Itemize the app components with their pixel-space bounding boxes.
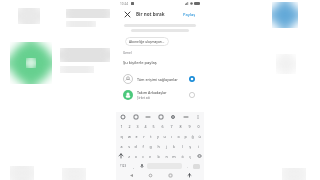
button[interactable]: 1 [117, 121, 125, 131]
button[interactable]: 9 [185, 121, 194, 131]
staticText: 10:24 [120, 2, 129, 6]
button[interactable]: Geri [127, 171, 135, 179]
staticText: 9 [188, 124, 191, 129]
staticText: w [128, 134, 131, 139]
button[interactable]: ç [186, 151, 194, 161]
button[interactable]: a [118, 141, 125, 151]
button[interactable]: Emoji [119, 113, 126, 120]
staticText: v [149, 154, 151, 159]
staticText: u [163, 134, 166, 139]
staticText: a [120, 144, 123, 149]
staticText: k [173, 144, 175, 149]
button[interactable]: Sticker [144, 113, 151, 120]
button[interactable]: o [175, 131, 182, 141]
button[interactable]: ı [168, 131, 175, 141]
staticText: ö [181, 154, 184, 159]
button[interactable]: Son uygulamalar [166, 171, 174, 179]
button[interactable]: Tüm erişimi sağlayanlar [116, 71, 204, 87]
button[interactable]: ö [178, 151, 186, 161]
button[interactable]: Enter [191, 161, 202, 171]
button[interactable]: Shift [117, 151, 125, 161]
button[interactable]: GIF [132, 113, 139, 120]
button[interactable]: q [117, 131, 125, 141]
button[interactable]: Mikrofon [137, 161, 146, 171]
button[interactable]: Ana ekran [146, 171, 154, 179]
button[interactable]: 7 [167, 121, 176, 131]
button[interactable]: Settings [169, 113, 176, 120]
button[interactable]: Klavye [185, 171, 193, 179]
button[interactable]: ğ [189, 131, 196, 141]
button[interactable]: Clipboard [157, 113, 164, 120]
button[interactable]: 0 [194, 121, 203, 131]
button[interactable]: g [146, 141, 154, 151]
button[interactable]: Seçili [187, 74, 197, 84]
button[interactable]: 4 [141, 121, 149, 131]
staticText: ş [189, 144, 191, 149]
staticText: s [128, 144, 130, 149]
button[interactable]: d [132, 141, 139, 151]
staticText: Paylaş [183, 12, 196, 17]
button[interactable]: Paylaş [181, 11, 198, 18]
button[interactable]: 2 [125, 121, 133, 131]
staticText: 8 [179, 124, 182, 129]
button[interactable]: Seç [187, 90, 197, 100]
staticText: n [165, 154, 168, 159]
button[interactable]: p [182, 131, 189, 141]
button[interactable]: e [133, 131, 140, 141]
button[interactable]: s [125, 141, 132, 151]
staticText: c [142, 154, 144, 159]
button[interactable]: h [154, 141, 162, 151]
staticText: Bir not bırak [136, 11, 165, 17]
staticText: Takım Arkadaşlar [137, 90, 167, 95]
button[interactable]: m [170, 151, 178, 161]
staticText: Tüm erişimi sağlayanlar [137, 77, 178, 82]
button[interactable]: 6 [158, 121, 167, 131]
button[interactable]: ü [196, 131, 203, 141]
button[interactable]: More [182, 113, 189, 120]
staticText: 1 [120, 124, 123, 129]
button[interactable]: l [178, 141, 186, 151]
button[interactable]: k [170, 141, 178, 151]
staticText: . [187, 164, 188, 169]
button[interactable]: Aboneliğe ulaşmayan... [125, 37, 169, 46]
button[interactable]: b [154, 151, 162, 161]
button[interactable]: Overflow [194, 113, 201, 120]
staticText: j [166, 144, 167, 149]
button[interactable]: w [125, 131, 133, 141]
staticText: ı [171, 134, 172, 139]
button[interactable]: i [194, 141, 202, 151]
button[interactable]: 8 [176, 121, 185, 131]
button[interactable]: z [125, 151, 132, 161]
button[interactable]: n [162, 151, 170, 161]
button[interactable]: c [139, 151, 146, 161]
staticText: t [150, 134, 152, 139]
staticText: 3 [136, 124, 139, 129]
button[interactable]: Kapat [122, 9, 132, 19]
button[interactable]: 3 [133, 121, 141, 131]
button[interactable]: t [147, 131, 154, 141]
button[interactable]: r [140, 131, 147, 141]
staticText: m [172, 154, 176, 159]
button[interactable]: u [161, 131, 168, 141]
button[interactable]: v [146, 151, 154, 161]
staticText: r [143, 134, 145, 139]
staticText: l [182, 144, 183, 149]
button[interactable]: ?123 [118, 161, 129, 171]
staticText: 2 [128, 124, 131, 129]
staticText: 5 [152, 124, 155, 129]
button[interactable]: 5 [149, 121, 158, 131]
button[interactable]: , [129, 161, 137, 171]
staticText: d [134, 144, 137, 149]
staticText: e [135, 134, 138, 139]
button[interactable]: ş [186, 141, 194, 151]
button[interactable]: Backspace [194, 151, 203, 161]
staticText: ç [189, 154, 191, 159]
button[interactable]: y [154, 131, 161, 141]
button[interactable]: f [139, 141, 146, 151]
button[interactable]: x [132, 151, 139, 161]
staticText: ü [198, 134, 201, 139]
button[interactable]: j [162, 141, 170, 151]
button[interactable]: Takım Arkadaşlar [116, 87, 204, 103]
